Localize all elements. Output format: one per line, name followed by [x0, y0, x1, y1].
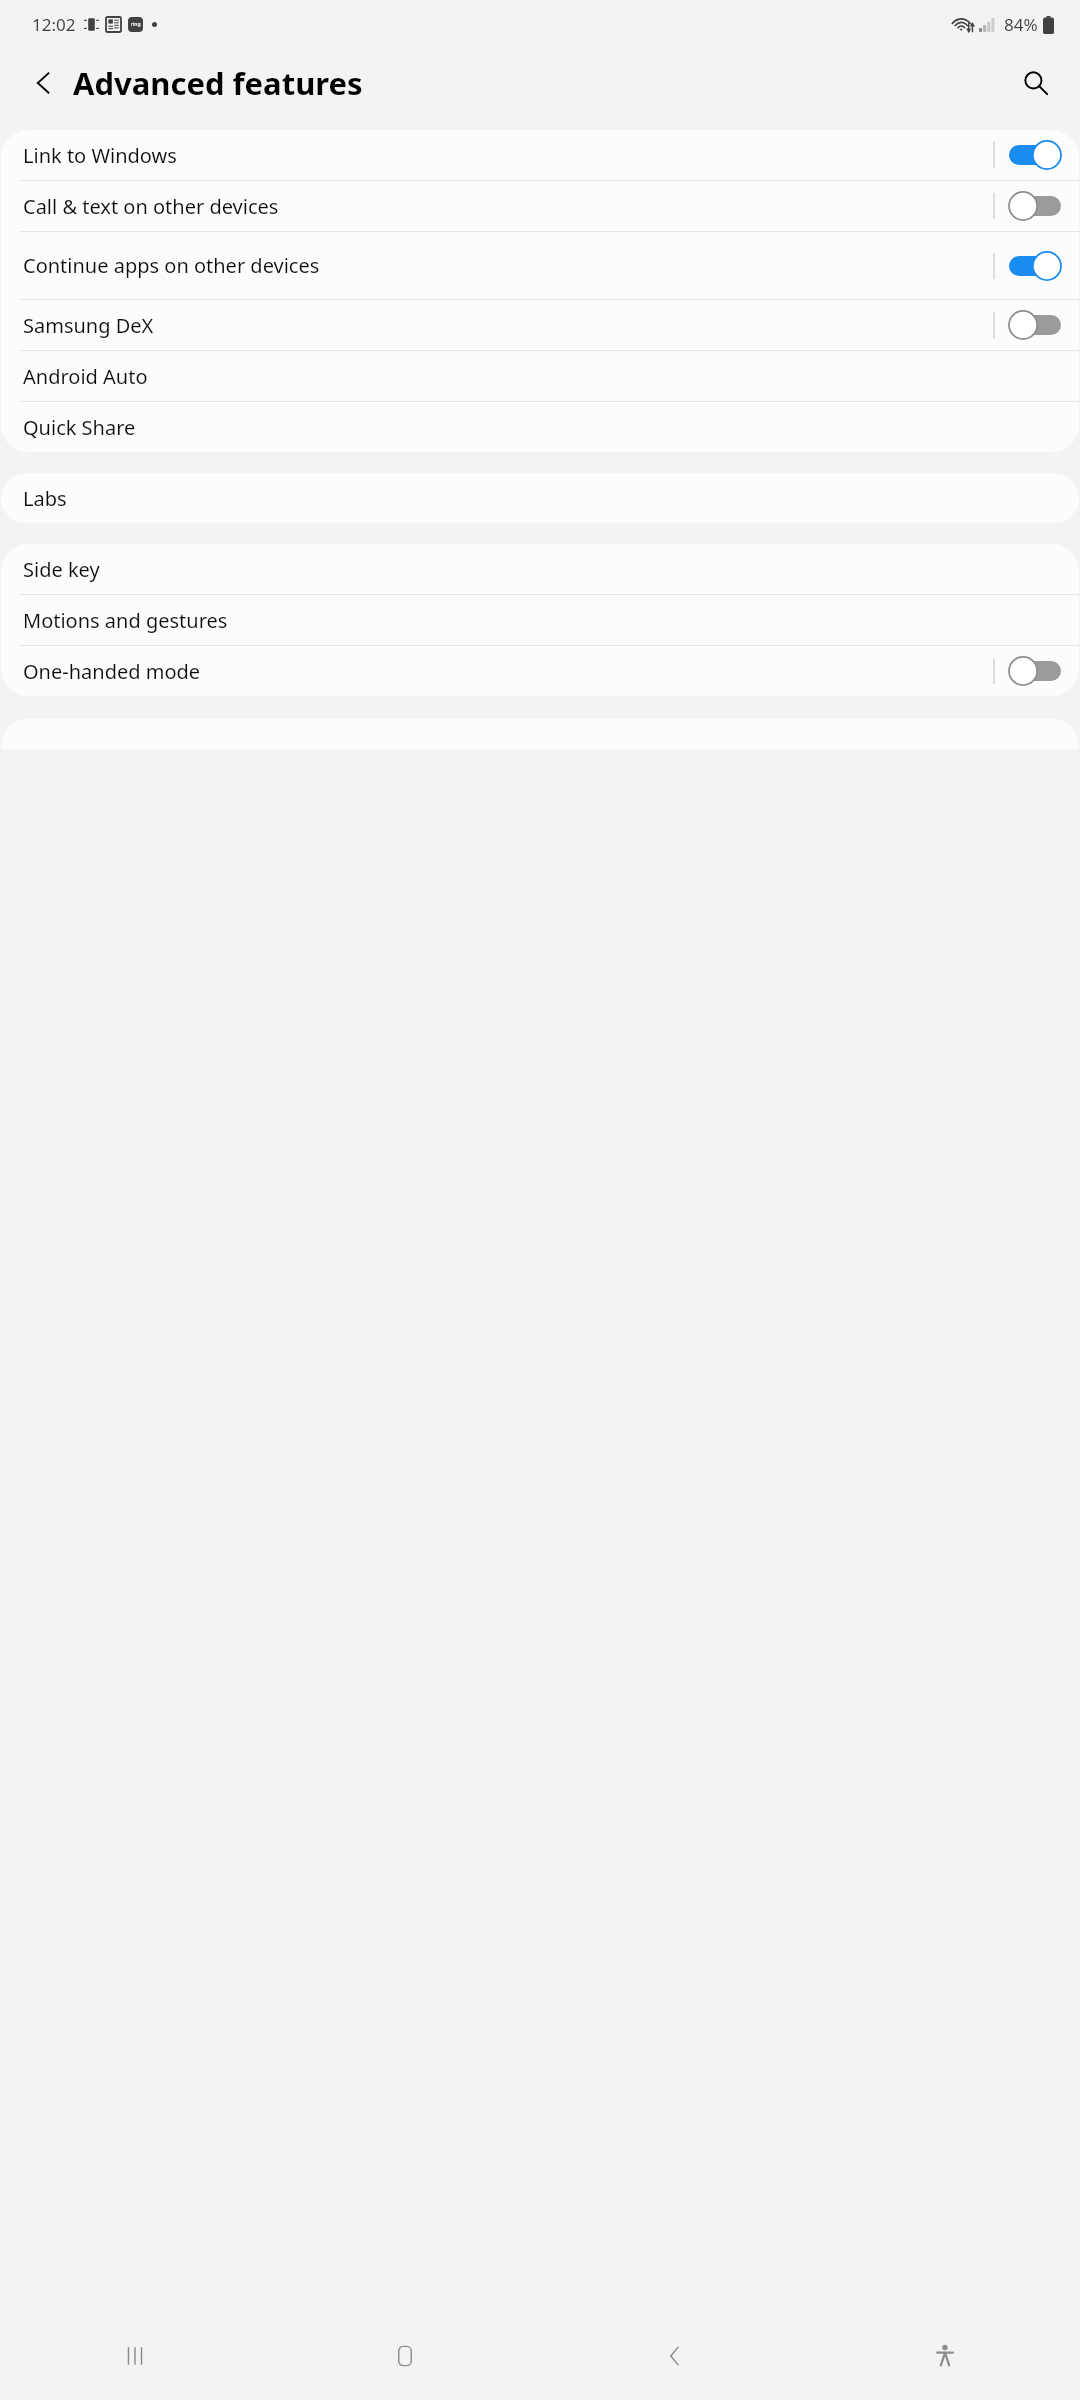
- staticText: Labs: [23, 485, 1049, 512]
- button[interactable]: Link to Windows: [1, 130, 1079, 180]
- button[interactable]: Search: [1010, 57, 1062, 109]
- button[interactable]: Call & text on other devices: [1, 181, 1079, 231]
- staticText: One-handed mode: [23, 658, 981, 685]
- staticText: Side key: [23, 556, 1049, 583]
- staticText: Quick Share: [23, 414, 1049, 441]
- button[interactable]: Continue apps on other devices toggle: [1009, 250, 1061, 282]
- button[interactable]: Back: [18, 57, 70, 109]
- staticText: Link to Windows: [23, 142, 981, 169]
- button[interactable]: Back: [540, 2312, 810, 2400]
- button[interactable]: Recents: [0, 2312, 270, 2400]
- staticText: ring: [131, 21, 141, 28]
- button[interactable]: Quick Share: [1, 402, 1079, 452]
- button[interactable]: Samsung DeX: [1, 300, 1079, 350]
- staticText: Advanced features: [73, 62, 363, 104]
- staticText: Motions and gestures: [23, 607, 1049, 634]
- button[interactable]: Side key: [1, 544, 1079, 594]
- button[interactable]: Motions and gestures: [1, 595, 1079, 645]
- button[interactable]: Android Auto: [1, 351, 1079, 401]
- staticText: Samsung DeX: [23, 312, 981, 339]
- button[interactable]: Call & text on other devices toggle: [1009, 190, 1061, 222]
- staticText: Call & text on other devices: [23, 193, 981, 220]
- staticText: 84%: [1004, 13, 1038, 36]
- button[interactable]: Samsung DeX toggle: [1009, 309, 1061, 341]
- staticText: Android Auto: [23, 363, 1049, 390]
- button[interactable]: Accessibility: [810, 2312, 1080, 2400]
- staticText: Continue apps on other devices: [23, 252, 981, 279]
- button[interactable]: Labs: [1, 473, 1079, 523]
- staticText: 12:02: [32, 13, 76, 36]
- button[interactable]: Continue apps on other devices: [1, 232, 1079, 299]
- button[interactable]: One-handed mode: [1, 646, 1079, 696]
- button[interactable]: Home: [270, 2312, 540, 2400]
- button[interactable]: One-handed mode toggle: [1009, 655, 1061, 687]
- button[interactable]: Link to Windows toggle: [1009, 139, 1061, 171]
